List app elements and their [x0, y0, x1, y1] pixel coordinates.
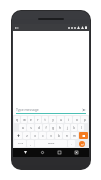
button[interactable]: Shift: [14, 132, 22, 139]
staticText: i: [68, 118, 69, 122]
button[interactable]: i: [65, 116, 72, 123]
staticText: p: [84, 118, 86, 122]
button[interactable]: Switch keyboard: [72, 148, 81, 157]
staticText: f: [45, 126, 47, 130]
staticText: d: [38, 126, 40, 130]
staticText: w: [23, 118, 26, 122]
button[interactable]: Enter: [76, 140, 88, 147]
staticText: u: [60, 118, 62, 122]
button[interactable]: m: [71, 132, 78, 139]
button[interactable]: k: [71, 124, 77, 131]
staticText: x: [34, 134, 36, 138]
button[interactable]: s: [27, 124, 34, 131]
button[interactable]: Home: [38, 148, 47, 157]
button[interactable]: q: [14, 116, 20, 123]
staticText: n: [66, 134, 68, 138]
button[interactable]: u: [57, 116, 64, 123]
staticText: o: [76, 118, 78, 122]
button[interactable]: a: [19, 124, 26, 131]
button[interactable]: v: [47, 132, 54, 139]
button[interactable]: x: [31, 132, 38, 139]
button[interactable]: r: [35, 116, 41, 123]
staticText: a: [22, 126, 24, 130]
staticText: v: [50, 134, 52, 138]
button[interactable]: n: [63, 132, 70, 139]
staticText: l: [81, 126, 82, 130]
button[interactable]: Send: [80, 106, 87, 113]
staticText: m: [73, 134, 76, 138]
staticText: r: [37, 118, 39, 122]
button[interactable]: Back: [21, 148, 30, 157]
staticText: ,: [30, 142, 31, 146]
button[interactable]: .: [68, 140, 75, 147]
button[interactable]: ?123: [14, 140, 26, 147]
button[interactable]: Recents: [55, 148, 64, 157]
button[interactable]: h: [57, 124, 63, 131]
staticText: ?123: [18, 142, 23, 145]
button[interactable]: p: [81, 116, 88, 123]
button[interactable]: g: [50, 124, 56, 131]
staticText: .: [71, 142, 72, 146]
staticText: z: [26, 134, 28, 138]
staticText: k: [73, 126, 75, 130]
staticText: Type message: [16, 107, 39, 112]
button[interactable]: j: [64, 124, 70, 131]
button[interactable]: Space: [35, 140, 67, 147]
button[interactable]: c: [39, 132, 46, 139]
button[interactable]: d: [35, 124, 42, 131]
button[interactable]: w: [21, 116, 27, 123]
button[interactable]: Type message: [16, 105, 79, 113]
button[interactable]: b: [55, 132, 62, 139]
button[interactable]: z: [23, 132, 30, 139]
staticText: j: [67, 126, 68, 130]
button[interactable]: e: [28, 116, 34, 123]
staticText: b: [58, 134, 60, 138]
staticText: s: [30, 126, 32, 130]
button[interactable]: t: [42, 116, 48, 123]
button[interactable]: Backspace: [79, 132, 88, 139]
staticText: c: [42, 134, 44, 138]
button[interactable]: y: [49, 116, 56, 123]
button[interactable]: ,: [27, 140, 34, 147]
staticText: q: [16, 118, 18, 122]
staticText: t: [44, 118, 46, 122]
staticText: e: [30, 118, 32, 122]
staticText: y: [52, 118, 54, 122]
button[interactable]: f: [43, 124, 49, 131]
staticText: h: [59, 126, 61, 130]
button[interactable]: o: [73, 116, 80, 123]
staticText: g: [52, 126, 54, 130]
button[interactable]: l: [78, 124, 84, 131]
staticText: space: [48, 142, 55, 145]
